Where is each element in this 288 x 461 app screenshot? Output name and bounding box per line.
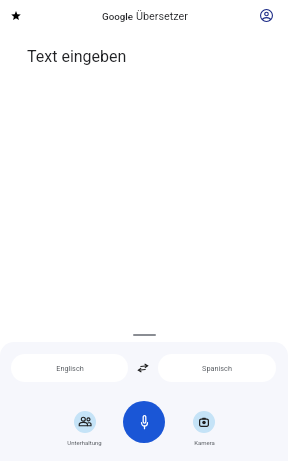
button[interactable]: Microphone: [123, 401, 165, 443]
staticText: Text eingeben: [27, 47, 127, 66]
button[interactable]: Unterhaltung: [67, 411, 102, 446]
staticText: Spanisch: [202, 364, 232, 373]
staticText: Übersetzer: [136, 10, 188, 23]
button[interactable]: Swap languages: [128, 353, 158, 383]
staticText: Google: [102, 11, 134, 22]
staticText: Kamera: [194, 439, 215, 446]
button[interactable]: Saved translations: [3, 3, 28, 28]
button[interactable]: Kamera: [193, 411, 215, 446]
staticText: Unterhaltung: [67, 439, 102, 446]
button[interactable]: Spanisch: [158, 354, 276, 382]
button[interactable]: Englisch: [11, 354, 128, 382]
staticText: Englisch: [56, 364, 84, 373]
button[interactable]: Account: [254, 3, 279, 28]
